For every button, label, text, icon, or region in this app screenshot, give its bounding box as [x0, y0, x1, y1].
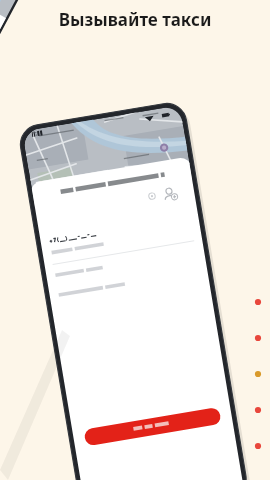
button[interactable]: Готово [76, 428, 206, 454]
button[interactable]: Меню [28, 148, 46, 166]
button[interactable]: Очистить [164, 180, 178, 194]
button[interactable]: Имя пассажира [34, 240, 204, 266]
button[interactable]: Номер телефона [34, 204, 204, 230]
staticText: Вызывайте такси [18, 8, 252, 480]
button[interactable]: Добавить пассажира [184, 176, 204, 196]
